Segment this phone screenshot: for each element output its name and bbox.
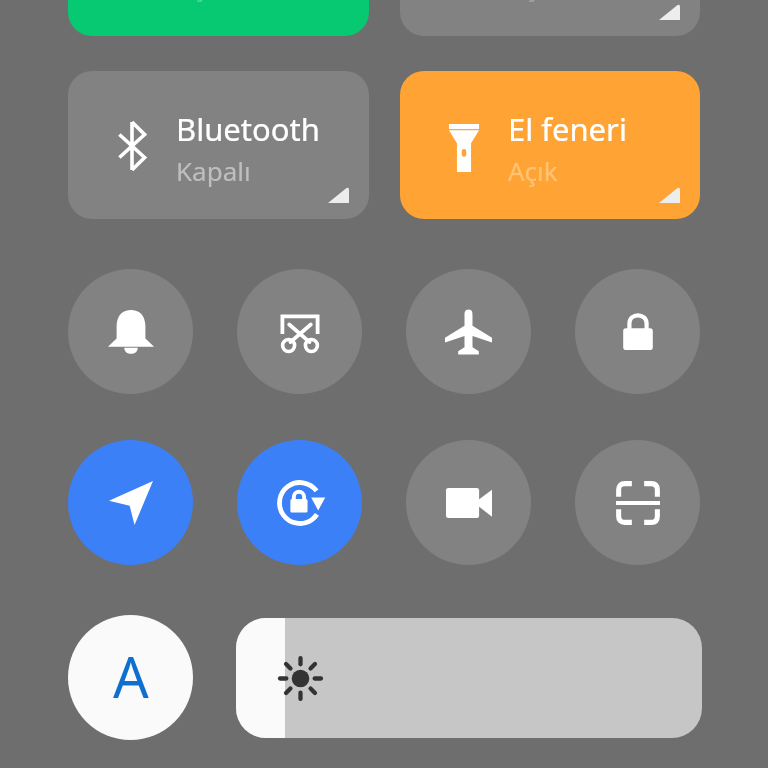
button[interactable]: Açık [68,0,369,36]
button[interactable]: Notifications [68,269,193,394]
staticText: A [113,638,149,714]
button[interactable]: Location [68,440,193,565]
staticText: Bluetooth [176,108,320,150]
button[interactable]: Airplane mode [406,269,531,394]
button[interactable]: Screen record [406,440,531,565]
button[interactable]: Auto rotate [237,440,362,565]
staticText: Açık [176,0,226,3]
button[interactable]: Brightness [236,618,702,738]
button[interactable]: Açık [400,0,700,36]
staticText: El feneri [508,108,627,150]
button[interactable]: Screenshot [237,269,362,394]
button[interactable]: Screen lock [575,269,700,394]
staticText: Açık [508,153,558,188]
button[interactable]: Bluetooth [68,71,369,219]
staticText: Açık [508,0,558,3]
button[interactable]: Auto brightness [68,615,193,740]
staticText: Kapalı [176,153,251,188]
button[interactable]: El feneri [400,71,700,219]
button[interactable]: Scan QR code [575,440,700,565]
